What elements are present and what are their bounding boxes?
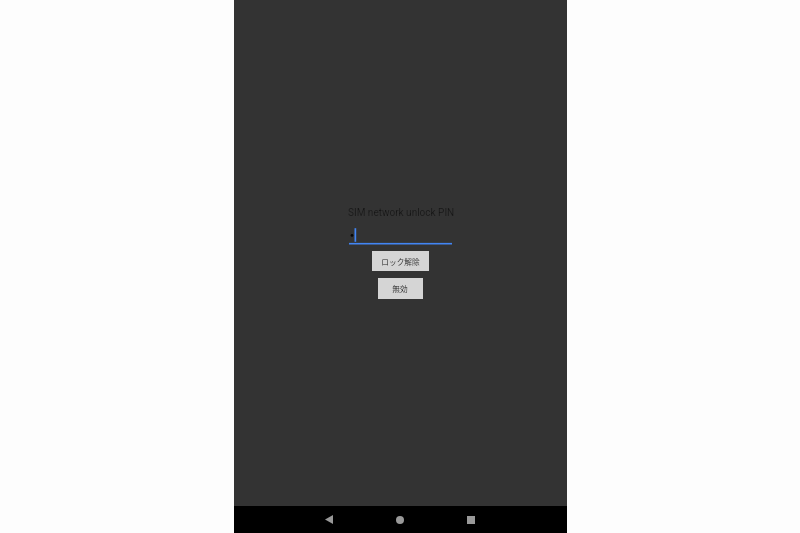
- button[interactable]: PIN entry field: [349, 225, 452, 247]
- button[interactable]: Recent apps: [454, 506, 487, 533]
- staticText: ロック解除: [381, 256, 420, 267]
- button[interactable]: ロック解除: [372, 251, 429, 271]
- staticText: SIM network unlock PIN: [348, 207, 455, 219]
- button[interactable]: 無効: [378, 278, 423, 299]
- staticText: 無効: [392, 283, 408, 294]
- button[interactable]: Home: [383, 506, 416, 533]
- button[interactable]: Back: [312, 506, 345, 533]
